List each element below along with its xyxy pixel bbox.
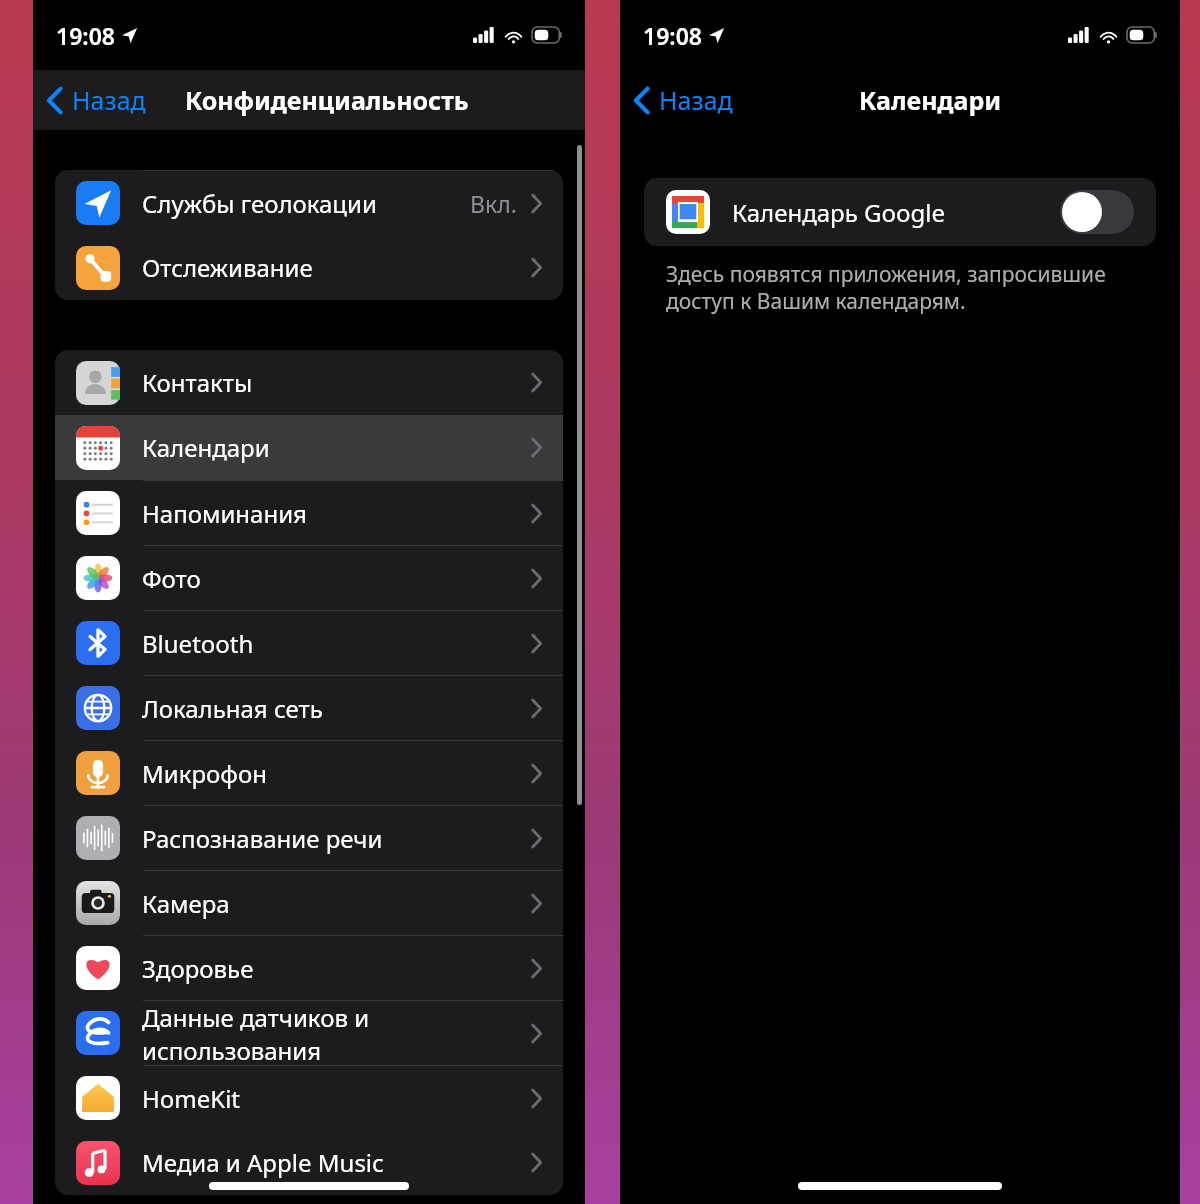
button[interactable]: HomeKit: [55, 1065, 563, 1130]
button[interactable]: Камера: [55, 870, 563, 935]
staticText: Календари: [142, 431, 531, 464]
staticText: Bluetooth: [142, 627, 531, 660]
staticText: 19:08: [56, 20, 115, 51]
button[interactable]: Назад: [33, 77, 156, 123]
staticText: Календари: [859, 83, 1002, 117]
staticText: Назад: [72, 83, 146, 117]
staticText: Данные датчиков и использования: [142, 1001, 531, 1065]
button[interactable]: Данные датчиков и использования: [55, 1000, 563, 1065]
button[interactable]: Распознавание речи: [55, 805, 563, 870]
button[interactable]: Календари: [55, 415, 563, 480]
staticText: Контакты: [142, 366, 531, 399]
button[interactable]: Медиа и Apple Music: [55, 1130, 563, 1195]
staticText: Медиа и Apple Music: [142, 1146, 531, 1179]
staticText: Микрофон: [142, 757, 531, 790]
staticText: Здоровье: [142, 952, 531, 985]
button[interactable]: Локальная сеть: [55, 675, 563, 740]
button[interactable]: Службы геолокации: [55, 170, 563, 235]
staticText: Напоминания: [142, 497, 531, 530]
staticText: Распознавание речи: [142, 822, 531, 855]
staticText: Фото: [142, 562, 531, 595]
button[interactable]: Здоровье: [55, 935, 563, 1000]
button[interactable]: Назад: [620, 77, 743, 123]
button[interactable]: Календарь Google: [644, 178, 1156, 246]
staticText: Отслеживание: [142, 251, 531, 284]
staticText: Назад: [659, 83, 733, 117]
button[interactable]: Фото: [55, 545, 563, 610]
staticText: Конфиденциальность: [185, 83, 469, 117]
staticText: Службы геолокации: [142, 187, 470, 220]
button[interactable]: Bluetooth: [55, 610, 563, 675]
staticText: Календарь Google: [732, 196, 1060, 229]
button[interactable]: Toggle Календарь Google: [1060, 190, 1134, 234]
button[interactable]: Микрофон: [55, 740, 563, 805]
staticText: Вкл.: [470, 188, 517, 219]
button[interactable]: Напоминания: [55, 480, 563, 545]
staticText: Камера: [142, 887, 531, 920]
button[interactable]: Контакты: [55, 350, 563, 415]
staticText: HomeKit: [142, 1082, 531, 1115]
staticText: Здесь появятся приложения, запросившие д…: [666, 260, 1134, 315]
staticText: 19:08: [643, 20, 702, 51]
button[interactable]: Отслеживание: [55, 235, 563, 300]
staticText: Локальная сеть: [142, 692, 531, 725]
